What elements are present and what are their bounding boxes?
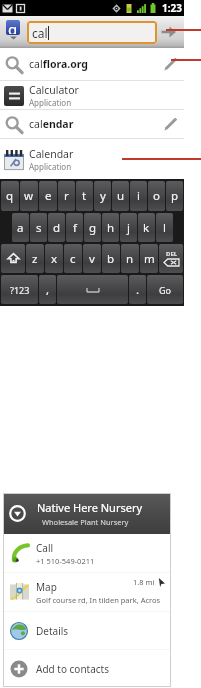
- staticText: p: [171, 188, 179, 204]
- staticText: Golf course rd, In tilden park, Acros: [36, 595, 161, 605]
- button[interactable]: c: [64, 244, 82, 273]
- staticText: f: [73, 220, 77, 236]
- staticText: ?123: [10, 284, 30, 296]
- staticText: o: [153, 188, 160, 204]
- button[interactable]: o: [148, 181, 165, 211]
- button[interactable]: ?123: [1, 275, 38, 304]
- button[interactable]: d: [48, 213, 65, 242]
- button[interactable]: g: [84, 213, 101, 242]
- staticText: w: [24, 188, 34, 204]
- button[interactable]: calflora.org: [0, 48, 184, 80]
- staticText: c: [70, 251, 76, 267]
- staticText: Application: [29, 97, 72, 108]
- button[interactable]: Search engine: [6, 20, 20, 40]
- staticText: d: [53, 220, 61, 236]
- button[interactable]: Calendar: [0, 139, 184, 179]
- button[interactable]: q: [1, 181, 19, 211]
- staticText: t: [82, 188, 87, 204]
- button[interactable]: u: [112, 181, 129, 211]
- button[interactable]: x: [45, 244, 63, 273]
- staticText: cal: [32, 25, 48, 41]
- button[interactable]: e: [39, 181, 57, 211]
- staticText: i: [137, 188, 140, 204]
- staticText: calflora.org: [29, 57, 88, 71]
- staticText: Calendar: [29, 147, 74, 161]
- staticText: +1 510-549-0211: [36, 556, 95, 566]
- button[interactable]: Edit query: [159, 113, 181, 135]
- staticText: u: [117, 188, 125, 204]
- staticText: Map: [36, 580, 57, 594]
- button[interactable]: i: [130, 181, 147, 211]
- button[interactable]: y: [94, 181, 111, 211]
- staticText: m: [144, 251, 155, 267]
- staticText: Wholesale Plant Nursery: [42, 517, 129, 527]
- button[interactable]: w: [20, 181, 38, 211]
- staticText: z: [32, 251, 38, 267]
- button[interactable]: l: [156, 213, 173, 242]
- staticText: Application: [29, 161, 72, 172]
- staticText: .: [136, 282, 140, 298]
- staticText: e: [45, 188, 52, 204]
- staticText: v: [89, 251, 95, 267]
- staticText: n: [126, 251, 134, 267]
- button[interactable]: Delete: [159, 244, 183, 273]
- staticText: g: [8, 20, 18, 34]
- button[interactable]: v: [83, 244, 101, 273]
- button[interactable]: ,: [39, 275, 56, 304]
- button[interactable]: z: [26, 244, 44, 273]
- button[interactable]: s: [30, 213, 47, 242]
- button[interactable]: Search: [157, 19, 179, 45]
- staticText: Details: [36, 624, 69, 638]
- button[interactable]: cal: [27, 21, 157, 44]
- button[interactable]: m: [140, 244, 158, 273]
- button[interactable]: Calculator: [0, 81, 184, 109]
- staticText: 1.8 mi: [133, 577, 155, 587]
- staticText: calendar: [29, 117, 74, 131]
- button[interactable]: Call: [3, 534, 171, 572]
- button[interactable]: j: [120, 213, 137, 242]
- button[interactable]: b: [102, 244, 120, 273]
- button[interactable]: f: [66, 213, 83, 242]
- button[interactable]: k: [138, 213, 155, 242]
- staticText: j: [127, 220, 130, 236]
- staticText: r: [64, 188, 69, 204]
- button[interactable]: t: [76, 181, 93, 211]
- button[interactable]: r: [58, 181, 75, 211]
- button[interactable]: Details: [3, 612, 171, 649]
- button[interactable]: calendar: [0, 110, 184, 138]
- button[interactable]: n: [121, 244, 139, 273]
- staticText: k: [143, 220, 150, 236]
- staticText: Calculator: [29, 83, 79, 97]
- staticText: x: [51, 251, 58, 267]
- staticText: y: [100, 188, 106, 204]
- staticText: a: [17, 220, 24, 236]
- staticText: h: [107, 220, 115, 236]
- button[interactable]: [57, 275, 128, 304]
- staticText: Call: [36, 541, 54, 555]
- staticText: Native Here Nursery: [37, 500, 143, 515]
- staticText: 1:23: [162, 1, 182, 15]
- button[interactable]: Add to contacts: [3, 650, 171, 687]
- button[interactable]: Map: [3, 573, 171, 611]
- staticText: Go: [159, 284, 171, 296]
- staticText: l: [163, 220, 166, 236]
- staticText: b: [107, 251, 115, 267]
- button[interactable]: Go: [147, 275, 183, 304]
- button[interactable]: Edit query: [159, 53, 181, 75]
- staticText: DEL: [166, 250, 178, 258]
- button[interactable]: h: [102, 213, 119, 242]
- button[interactable]: Shift: [1, 244, 25, 273]
- staticText: g: [89, 220, 97, 236]
- staticText: ,: [46, 282, 50, 298]
- button[interactable]: a: [12, 213, 29, 242]
- staticText: q: [6, 188, 14, 204]
- staticText: s: [36, 220, 42, 236]
- staticText: Add to contacts: [36, 662, 109, 676]
- button[interactable]: p: [166, 181, 183, 211]
- button[interactable]: Native Here Nursery: [3, 493, 171, 534]
- button[interactable]: .: [129, 275, 146, 304]
